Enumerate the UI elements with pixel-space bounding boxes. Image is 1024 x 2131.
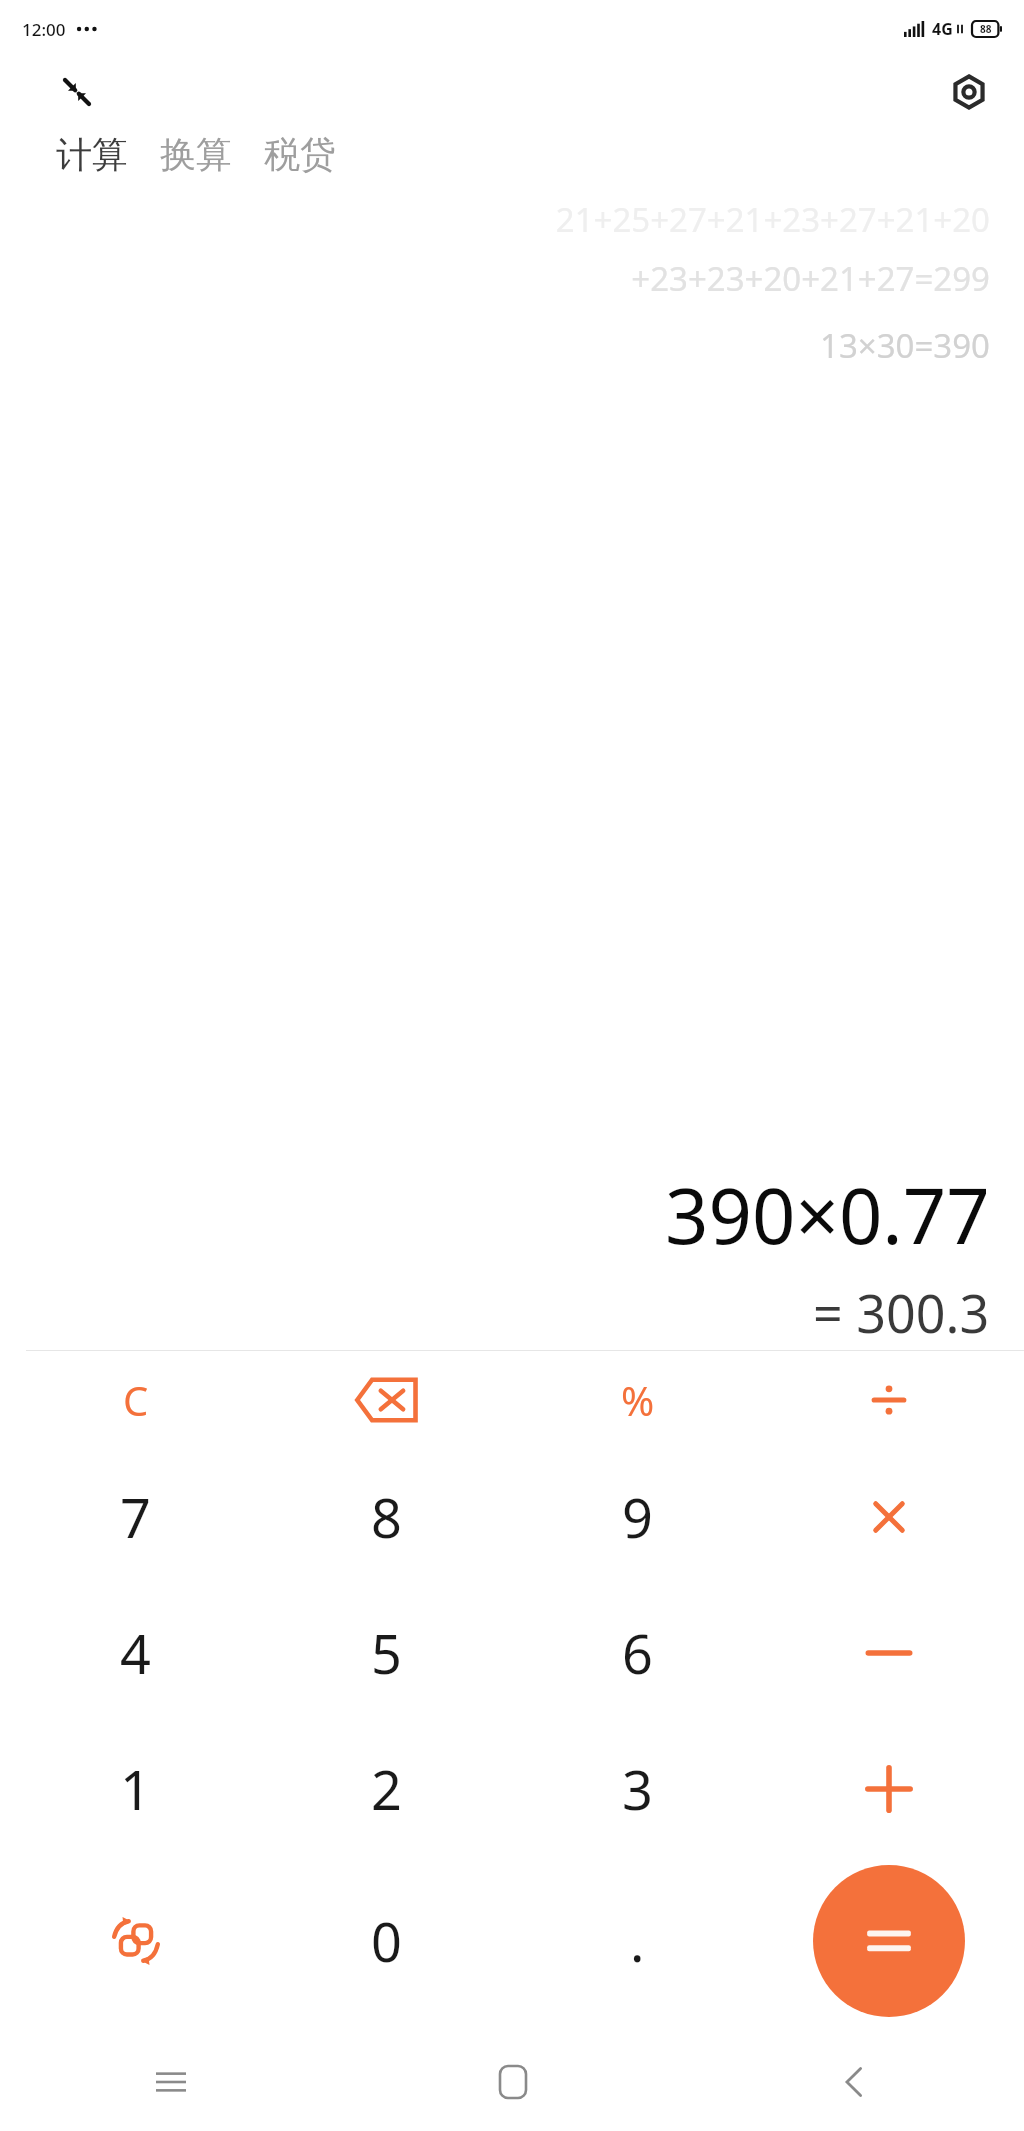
- button[interactable]: 8: [261, 1449, 512, 1585]
- staticText: 1: [120, 1752, 151, 1826]
- button[interactable]: Collapse: [50, 65, 104, 119]
- button[interactable]: Clear: [10, 1351, 261, 1449]
- staticText: 计算: [56, 132, 128, 177]
- button[interactable]: Settings: [940, 63, 998, 121]
- staticText: 5: [371, 1616, 402, 1690]
- button[interactable]: Equals: [813, 1865, 965, 2017]
- staticText: 88: [980, 22, 992, 36]
- staticText: = 300.3: [813, 1277, 990, 1348]
- staticText: 21+25+27+21+23+27+21+20: [555, 197, 990, 242]
- button[interactable]: 2: [261, 1721, 512, 1857]
- staticText: C: [123, 1373, 149, 1427]
- button[interactable]: 5: [261, 1585, 512, 1721]
- staticText: .: [630, 1904, 645, 1978]
- staticText: 4G: [932, 18, 953, 40]
- button[interactable]: Decimal point: [512, 1857, 763, 2025]
- staticText: 9: [622, 1480, 653, 1554]
- button[interactable]: 换算: [144, 132, 248, 177]
- staticText: 12:00: [22, 18, 66, 41]
- staticText: 7: [120, 1480, 151, 1554]
- staticText: %: [621, 1373, 655, 1427]
- button[interactable]: Backspace: [261, 1351, 512, 1449]
- staticText: 换算: [160, 132, 232, 177]
- button[interactable]: 9: [512, 1449, 763, 1585]
- staticText: 4: [120, 1616, 151, 1690]
- button[interactable]: 7: [10, 1449, 261, 1585]
- staticText: 8: [371, 1480, 402, 1554]
- staticText: 13×30=390: [820, 323, 990, 368]
- button[interactable]: Divide: [763, 1351, 1014, 1449]
- button[interactable]: 计算: [56, 132, 144, 177]
- button[interactable]: Operator: [763, 1721, 1014, 1857]
- staticText: 6: [622, 1616, 653, 1690]
- button[interactable]: 6: [512, 1585, 763, 1721]
- button[interactable]: Back: [683, 2033, 1024, 2131]
- button[interactable]: 0: [261, 1857, 512, 2025]
- button[interactable]: 1: [10, 1721, 261, 1857]
- staticText: 税贷: [264, 132, 336, 177]
- button[interactable]: 税贷: [248, 132, 352, 177]
- staticText: 0: [371, 1904, 402, 1978]
- button[interactable]: Percent: [512, 1351, 763, 1449]
- staticText: 2: [371, 1752, 402, 1826]
- button[interactable]: Operator: [763, 1585, 1014, 1721]
- staticText: 3: [622, 1752, 653, 1826]
- button[interactable]: Convert units: [10, 1857, 261, 2025]
- staticText: +23+23+20+21+27=299: [631, 256, 990, 301]
- button[interactable]: Operator: [763, 1449, 1014, 1585]
- button[interactable]: Recent apps: [0, 2033, 342, 2131]
- staticText: 390×0.77: [665, 1163, 990, 1267]
- button[interactable]: 4: [10, 1585, 261, 1721]
- button[interactable]: 3: [512, 1721, 763, 1857]
- button[interactable]: Home: [342, 2033, 683, 2131]
